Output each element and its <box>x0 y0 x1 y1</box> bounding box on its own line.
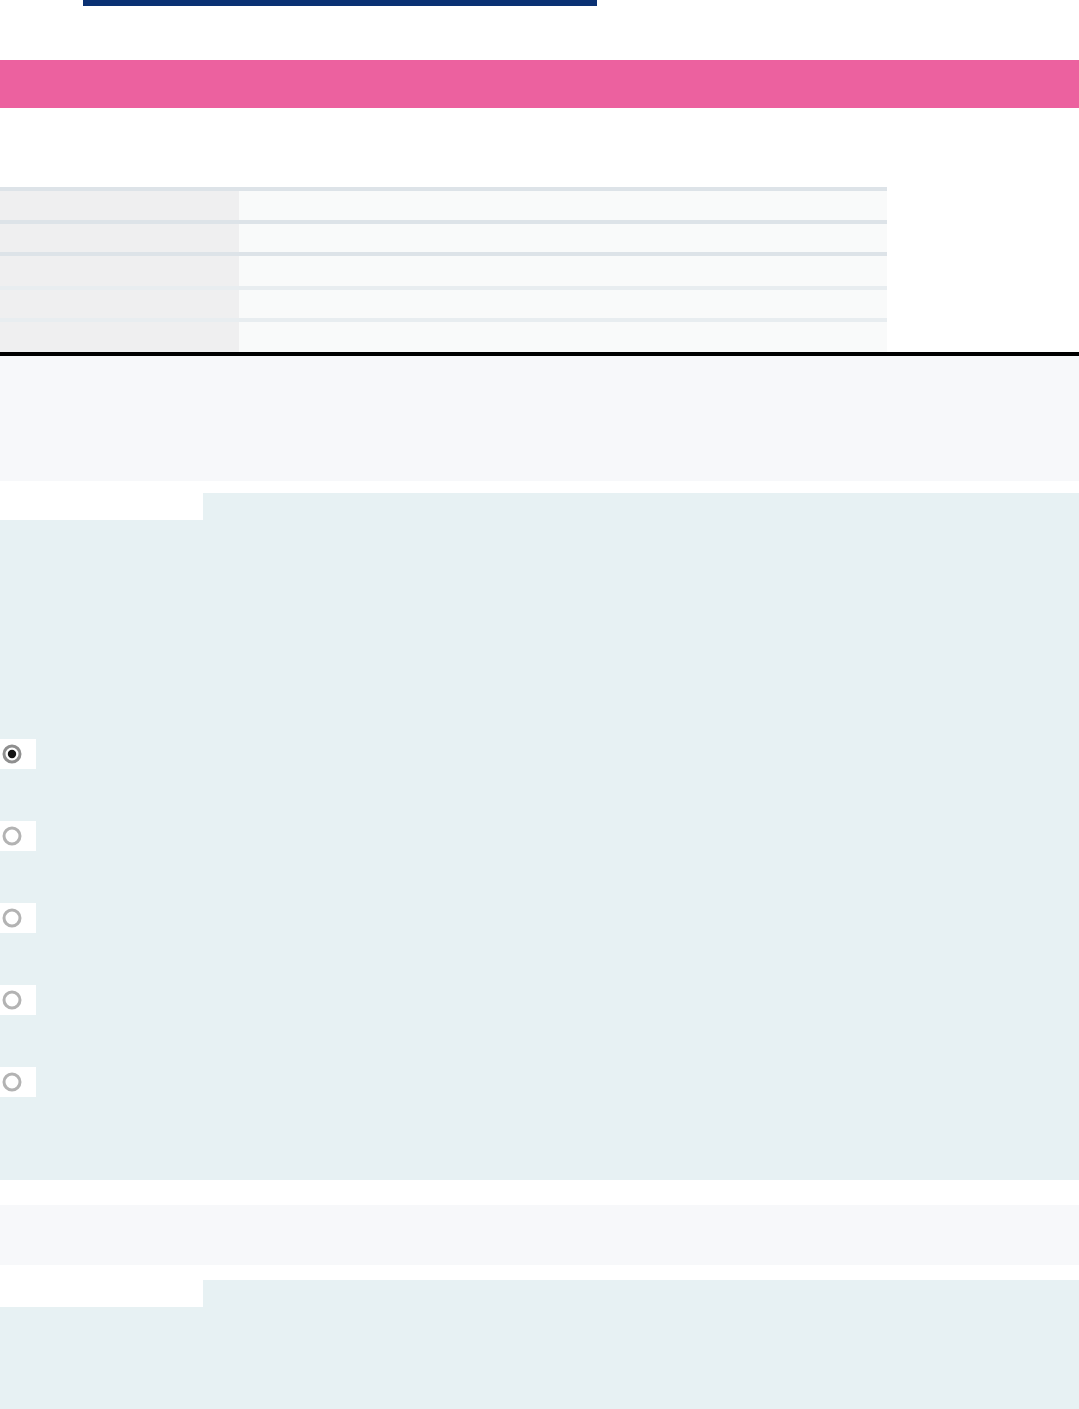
button[interactable]: Option 5 <box>0 1067 36 1097</box>
button[interactable]: Option 4 <box>0 985 36 1015</box>
button[interactable]: Option 1 <box>0 739 36 769</box>
button[interactable]: Option 3 <box>0 903 36 933</box>
button[interactable]: Option 2 <box>0 821 36 851</box>
